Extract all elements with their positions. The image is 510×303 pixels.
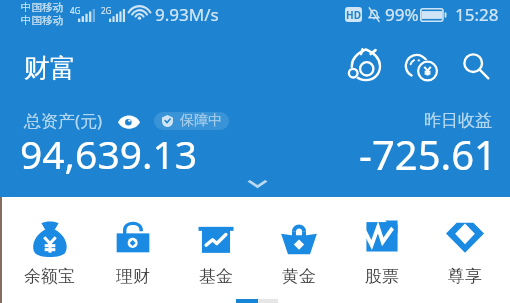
button[interactable]: 余额宝 (8, 197, 91, 287)
staticText: 基金 (199, 266, 233, 287)
staticText: 中国移动 (21, 1, 63, 14)
button[interactable]: 股票 (340, 197, 423, 287)
staticText: 总资产(元) (24, 109, 103, 132)
staticText: 99% (385, 3, 419, 26)
staticText: -725.61 (359, 127, 497, 181)
button[interactable]: 保障中 (154, 112, 229, 130)
staticText: 4G (70, 5, 81, 16)
button[interactable]: 黄金 (257, 197, 340, 287)
staticText: 2G (101, 5, 112, 16)
staticText: 理财 (116, 266, 150, 287)
button[interactable]: Search (454, 42, 498, 86)
staticText: 昨日收益 (424, 110, 492, 131)
staticText: 股票 (365, 266, 399, 287)
staticText: 尊享 (448, 266, 482, 287)
button[interactable]: 尊享 (423, 197, 506, 287)
staticText: 15:28 (455, 3, 499, 26)
staticText: 余额宝 (24, 266, 75, 287)
staticText: 9.93M/s (155, 3, 219, 26)
staticText: 中国移动 (21, 14, 63, 27)
staticText: 94,639.13 (20, 127, 198, 180)
button[interactable]: Ant Fortune assistant (342, 42, 386, 86)
staticText: 保障中 (180, 112, 222, 130)
staticText: 财富 (24, 52, 76, 85)
button[interactable]: Bills and payments (398, 42, 442, 86)
staticText: 黄金 (282, 266, 316, 287)
button[interactable]: 理财 (91, 197, 174, 287)
button[interactable]: 基金 (174, 197, 257, 287)
button[interactable]: Toggle balance visibility (118, 115, 140, 129)
staticText: HD (346, 8, 361, 22)
